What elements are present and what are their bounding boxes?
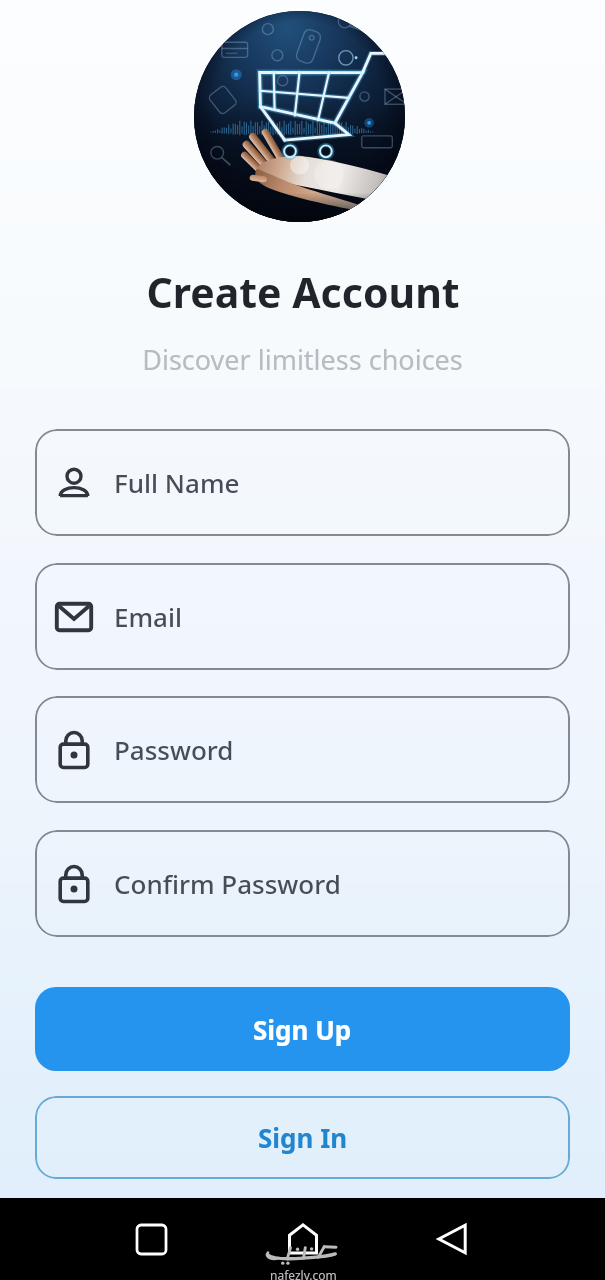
button[interactable]: Home (275, 1211, 331, 1267)
button[interactable]: Confirm Password (35, 830, 570, 937)
staticText: Sign Up (253, 1012, 352, 1047)
button[interactable]: Back (424, 1211, 480, 1267)
button[interactable]: Full Name (35, 429, 570, 536)
staticText: Create Account (146, 264, 460, 320)
button[interactable]: Password (35, 696, 570, 803)
button[interactable]: Sign In (35, 1096, 570, 1179)
staticText: Discover limitless choices (142, 341, 463, 378)
staticText: Password (114, 732, 234, 767)
button[interactable]: Email (35, 563, 570, 670)
staticText: Sign In (258, 1120, 348, 1155)
staticText: Email (114, 599, 183, 634)
staticText: Full Name (114, 465, 240, 500)
staticText: Confirm Password (114, 866, 341, 901)
button[interactable]: Recent apps (123, 1211, 179, 1267)
button[interactable]: Sign Up (35, 987, 570, 1071)
staticText: nafezly.com (270, 1267, 337, 1280)
